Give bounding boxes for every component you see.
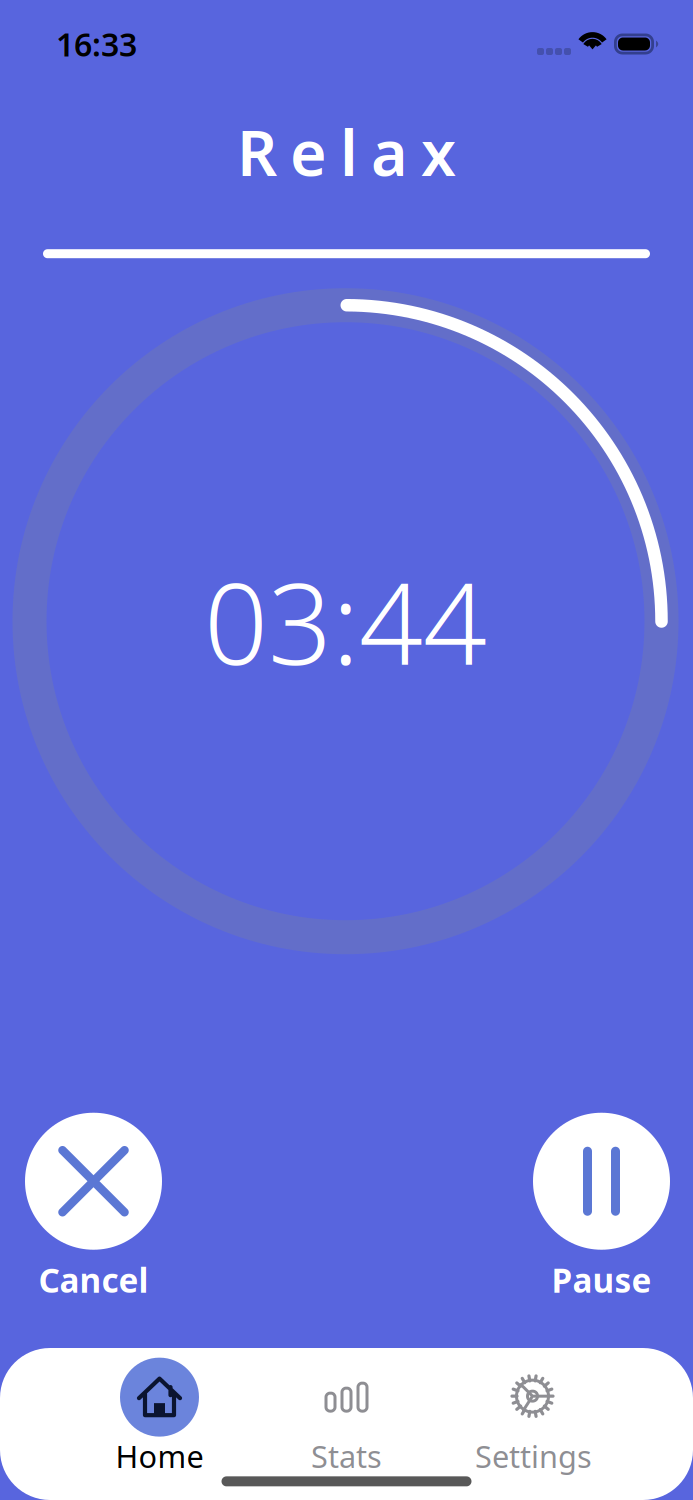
staticText: Stats — [311, 1436, 382, 1476]
button[interactable]: Pause — [533, 1113, 670, 1302]
button[interactable]: Stats — [253, 1359, 440, 1476]
button[interactable]: Home — [66, 1359, 253, 1476]
staticText: Settings — [475, 1436, 592, 1476]
staticText: 03:44 — [204, 547, 487, 696]
staticText: Cancel — [38, 1258, 148, 1302]
staticText: 16:33 — [56, 23, 137, 65]
button[interactable]: Cancel — [25, 1113, 162, 1302]
staticText: Pause — [551, 1258, 651, 1302]
staticText: Home — [115, 1436, 203, 1476]
button[interactable]: Settings — [440, 1359, 627, 1476]
staticText: Relax — [237, 110, 456, 193]
